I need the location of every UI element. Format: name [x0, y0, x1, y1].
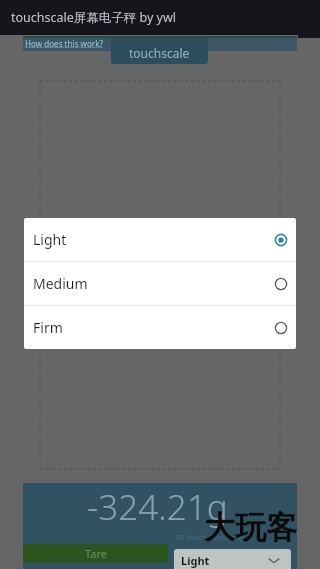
staticText: touchscale [129, 45, 190, 61]
staticText: Medium [33, 274, 273, 293]
staticText: 3D touch sensitivity [175, 532, 244, 542]
button[interactable]: How does this work? [23, 36, 297, 51]
staticText: Tare [85, 546, 107, 561]
staticText: Firm [33, 318, 273, 337]
button[interactable]: Light [174, 549, 291, 569]
staticText: Light [181, 553, 210, 568]
staticText: How does this work? [25, 38, 104, 49]
staticText: -324.21g [87, 483, 228, 531]
button[interactable]: Light [24, 218, 296, 261]
button[interactable]: Tare [23, 544, 168, 563]
staticText: 大玩客 [204, 508, 297, 547]
staticText: touchscale屏幕电子秤 by ywl [11, 9, 288, 26]
button[interactable]: touchscale [111, 38, 208, 64]
button[interactable]: Medium [24, 262, 296, 305]
button[interactable]: Firm [24, 306, 296, 349]
staticText: Light [33, 230, 273, 249]
